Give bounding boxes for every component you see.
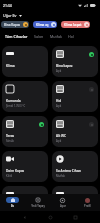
button[interactable]: Klima kapat bbox=[61, 21, 90, 28]
staticText: Yatak Odası bbox=[56, 204, 74, 208]
button[interactable]: Alt WC bbox=[52, 116, 98, 147]
button[interactable]: Mutfak bbox=[47, 32, 65, 41]
staticText: Bina Kapısı bbox=[4, 23, 21, 27]
button[interactable]: Teras bbox=[2, 116, 48, 147]
staticText: Açık bbox=[56, 69, 62, 73]
button[interactable]: Ev bbox=[0, 197, 25, 208]
button[interactable]: Hol bbox=[52, 81, 98, 112]
staticText: Klima kapat bbox=[64, 23, 82, 27]
staticText: Bina kapısı bbox=[56, 64, 73, 68]
staticText: 21:34 bbox=[3, 3, 12, 8]
button[interactable]: Daire Kapısı bbox=[2, 151, 48, 182]
button[interactable]: Klima aç bbox=[33, 21, 57, 28]
button[interactable]: Kumanda bbox=[2, 81, 48, 112]
button[interactable]: Tüm Cihazlar bbox=[2, 32, 31, 41]
staticText: Açık bbox=[56, 139, 62, 143]
button[interactable]: Bina kapısı bbox=[52, 46, 98, 77]
button[interactable]: Hol bbox=[65, 32, 77, 41]
staticText: Salon bbox=[34, 34, 44, 39]
button[interactable]: Uğur Ev bbox=[2, 12, 23, 19]
staticText: Mutfak bbox=[56, 174, 65, 178]
staticText: Alt WC bbox=[56, 134, 66, 138]
staticText: Hol bbox=[68, 34, 74, 39]
staticText: Sönük bbox=[6, 139, 14, 143]
staticText: Kumanda bbox=[6, 99, 21, 103]
staticText: Klima aç bbox=[36, 23, 49, 27]
staticText: Tüm Cihazlar bbox=[5, 34, 28, 39]
button[interactable]: Ayarlar bbox=[50, 197, 75, 208]
staticText: Teras bbox=[6, 134, 15, 138]
staticText: Açık bbox=[56, 104, 62, 108]
button[interactable]: Bina Kapısı bbox=[1, 21, 29, 28]
staticText: Salon bbox=[6, 204, 15, 208]
button[interactable]: Hesap bbox=[75, 197, 100, 208]
button[interactable]: Su Arıtma Cihazı bbox=[52, 151, 98, 182]
staticText: Ev bbox=[11, 204, 14, 208]
staticText: Hol bbox=[56, 99, 62, 103]
staticText: Mutfak bbox=[50, 34, 62, 39]
staticText: Şimdi 1.76/3 °C bbox=[6, 104, 26, 108]
button[interactable]: Salon bbox=[31, 32, 47, 41]
staticText: Profil bbox=[84, 204, 91, 208]
staticText: Yedi Yapay bbox=[31, 204, 45, 208]
button[interactable]: Cihazlar bbox=[25, 197, 50, 208]
staticText: Klima bbox=[6, 64, 15, 68]
staticText: Daire Kapısı bbox=[6, 169, 25, 173]
button[interactable]: Yatak Odası bbox=[52, 186, 98, 217]
staticText: Ayar bbox=[60, 204, 66, 208]
button[interactable]: Klima bbox=[2, 46, 48, 77]
staticText: Su Arıtma Cihazı bbox=[56, 169, 81, 173]
staticText: Kilitli bbox=[6, 174, 13, 178]
button[interactable]: Salon bbox=[2, 186, 48, 217]
staticText: Uğur Ev bbox=[3, 13, 17, 18]
